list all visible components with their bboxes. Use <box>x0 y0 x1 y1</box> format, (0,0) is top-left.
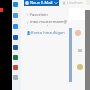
button[interactable]: Sender avatar <box>75 30 81 36</box>
button[interactable]: Favoriten <box>22 11 68 18</box>
staticText: Neue E-Mail <box>30 0 53 5</box>
button[interactable]: App 8 <box>13 75 18 80</box>
button[interactable]: App 1 <box>13 2 18 7</box>
button[interactable]: Navigation sidebar <box>0 0 12 90</box>
button[interactable]: App 4 <box>13 35 18 40</box>
staticText: Favoriten <box>30 12 48 17</box>
button[interactable]: Neue E-Mail <box>24 0 59 6</box>
staticText: Löschen <box>67 0 83 5</box>
button[interactable]: Delete <box>62 1 66 5</box>
button[interactable]: Sender avatar 2 <box>77 64 83 70</box>
button[interactable]: App 5 <box>13 45 18 50</box>
staticText: max.mustermann@domain.de <box>30 19 68 26</box>
button[interactable]: Konto hinzufügen <box>31 30 65 35</box>
button[interactable]: App 7 <box>13 65 18 70</box>
button[interactable]: App 2 <box>13 13 18 18</box>
button[interactable]: App 6 <box>13 55 18 60</box>
button[interactable]: App 3 <box>13 24 18 29</box>
button[interactable]: max.mustermann@domain.de <box>22 19 68 26</box>
